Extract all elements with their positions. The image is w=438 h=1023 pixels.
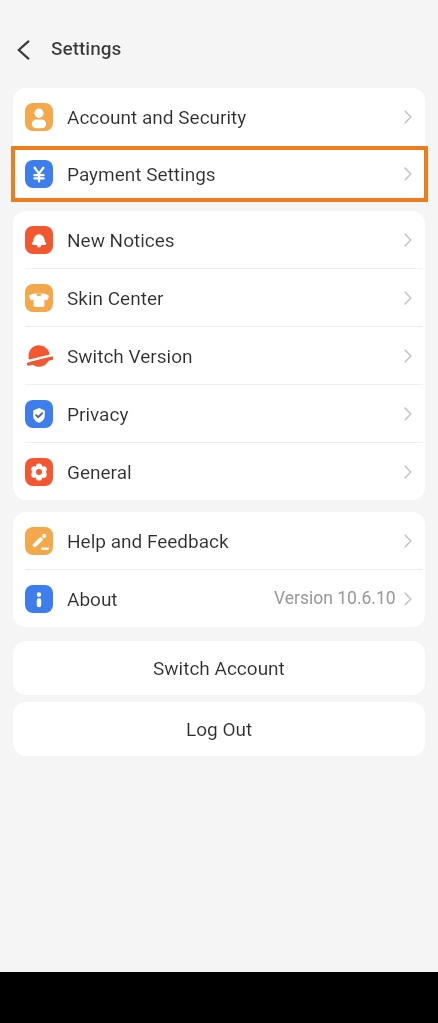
- button[interactable]: Account and Security: [13, 88, 425, 145]
- staticText: Switch Account: [153, 657, 285, 679]
- staticText: General: [67, 461, 132, 483]
- button[interactable]: Help and Feedback: [13, 512, 425, 569]
- staticText: Settings: [51, 37, 122, 59]
- button[interactable]: Settings: [17, 37, 122, 59]
- staticText: Account and Security: [67, 106, 247, 128]
- staticText: Privacy: [67, 403, 129, 425]
- staticText: New Notices: [67, 229, 175, 251]
- button[interactable]: Skin Center: [13, 269, 425, 326]
- button[interactable]: Payment Settings: [13, 145, 425, 202]
- staticText: Help and Feedback: [67, 530, 229, 552]
- staticText: Skin Center: [67, 287, 164, 309]
- button[interactable]: Switch Account: [13, 641, 425, 695]
- staticText: Log Out: [186, 718, 253, 740]
- button[interactable]: General: [13, 443, 425, 500]
- staticText: Switch Version: [67, 345, 193, 367]
- staticText: Version 10.6.10: [274, 588, 396, 609]
- button[interactable]: Privacy: [13, 385, 425, 442]
- staticText: About: [67, 588, 118, 610]
- button[interactable]: New Notices: [13, 211, 425, 268]
- button[interactable]: Log Out: [13, 702, 425, 756]
- staticText: Payment Settings: [67, 163, 216, 185]
- button[interactable]: Switch Version: [13, 327, 425, 384]
- button[interactable]: About: [13, 570, 425, 627]
